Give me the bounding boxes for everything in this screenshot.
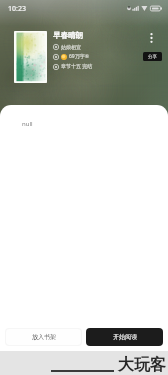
button[interactable]: 开始阅读	[86, 328, 163, 346]
staticText: 10:23	[8, 4, 26, 14]
staticText: 大玩客	[118, 355, 166, 375]
button[interactable]: More options	[144, 31, 158, 45]
staticText: 早春晴朗	[53, 31, 83, 40]
staticText: 放入书架	[32, 333, 56, 341]
staticText: 姑娘相宜	[61, 44, 81, 50]
staticText: 开始阅读	[113, 333, 137, 341]
staticText: 分享	[148, 54, 157, 60]
staticText: null	[22, 120, 33, 128]
button[interactable]: 放入书架	[6, 329, 81, 345]
button[interactable]: 分享	[143, 52, 162, 61]
staticText: 章节十五 完结	[61, 63, 93, 70]
staticText: 69万字⑥	[69, 53, 90, 60]
